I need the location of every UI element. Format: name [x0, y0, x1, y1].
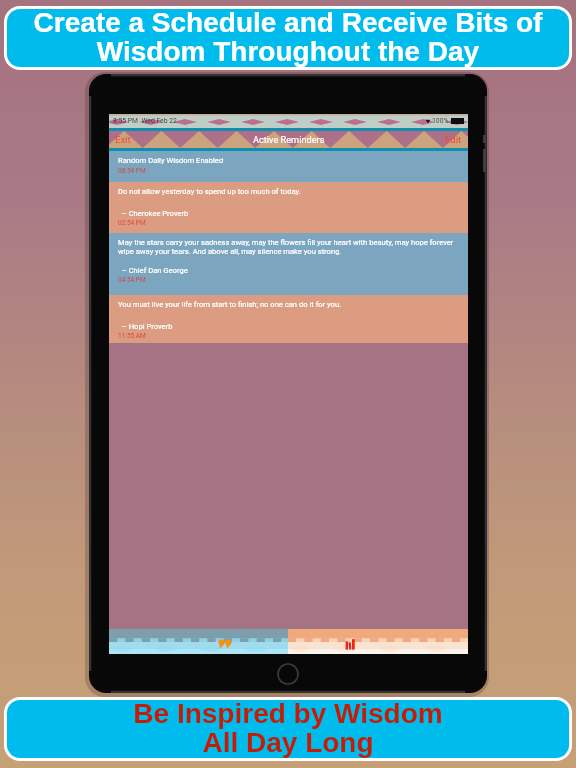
staticText: Exit: [115, 134, 131, 145]
button[interactable]: May the stars carry your sadness away, m…: [109, 233, 468, 295]
button[interactable]: Edit: [439, 132, 468, 147]
staticText: 04:54 PM: [118, 276, 146, 284]
other: Home: [277, 663, 299, 685]
staticText: May the stars carry your sadness away, m…: [118, 238, 454, 247]
staticText: You must live your life from start to fi…: [118, 300, 342, 309]
staticText: Active Reminders: [253, 134, 325, 145]
staticText: 08:54 PM: [118, 167, 146, 175]
button[interactable]: Do not allow yesterday to spend up too m…: [109, 182, 468, 233]
staticText: – Hopi Proverb: [118, 322, 173, 331]
staticText: Random Daily Wisdom Enabled: [118, 156, 224, 165]
staticText: Be Inspired by Wisdom All Day Long: [7, 700, 569, 758]
button[interactable]: Random Daily Wisdom Enabled: [109, 151, 468, 182]
button[interactable]: You must live your life from start to fi…: [109, 295, 468, 343]
button[interactable]: Exit: [109, 132, 137, 147]
staticText: Create a Schedule and Receive Bits of Wi…: [7, 9, 569, 67]
staticText: Do not allow yesterday to spend up too m…: [118, 187, 301, 196]
staticText: Edit: [445, 134, 462, 145]
button[interactable]: Library: [288, 629, 468, 654]
staticText: wipe away your tears. And above all, may…: [118, 247, 342, 256]
button[interactable]: Quotes: [109, 629, 288, 654]
staticText: – Chief Dan George: [118, 266, 188, 275]
staticText: – Cherokee Proverb: [118, 209, 189, 218]
staticText: 8:55 PM Wed Feb 22: [113, 117, 177, 125]
staticText: 11:55 AM: [118, 332, 146, 340]
staticText: 100%: [432, 117, 449, 125]
staticText: 02:54 PM: [118, 219, 146, 227]
